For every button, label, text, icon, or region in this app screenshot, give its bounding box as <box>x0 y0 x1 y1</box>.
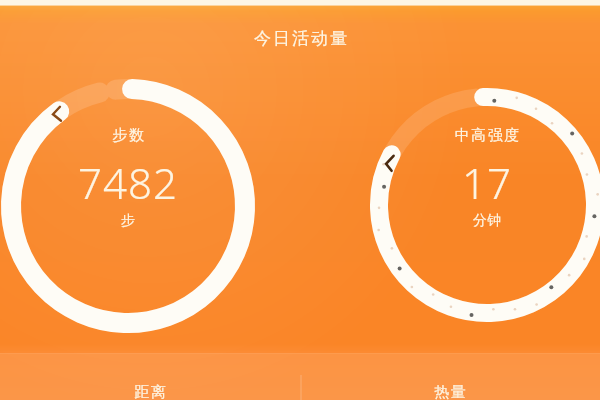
staticText: 7482 <box>78 154 178 211</box>
button[interactable]: 距离 <box>0 356 300 400</box>
staticText: 中高强度 <box>454 126 520 145</box>
button[interactable]: 今日活动量 <box>0 0 600 400</box>
staticText: 步 <box>121 212 135 230</box>
button[interactable]: 步数 7482 步 <box>48 126 208 286</box>
staticText: 分钟 <box>473 212 501 230</box>
staticText: 今日活动量 <box>253 28 348 49</box>
staticText: 热量 <box>434 383 466 400</box>
staticText: 步数 <box>111 126 145 145</box>
staticText: 距离 <box>134 383 166 400</box>
button[interactable]: 热量 <box>300 356 600 400</box>
button[interactable]: 中高强度 17 分钟 <box>409 126 565 286</box>
staticText: 17 <box>462 154 512 211</box>
